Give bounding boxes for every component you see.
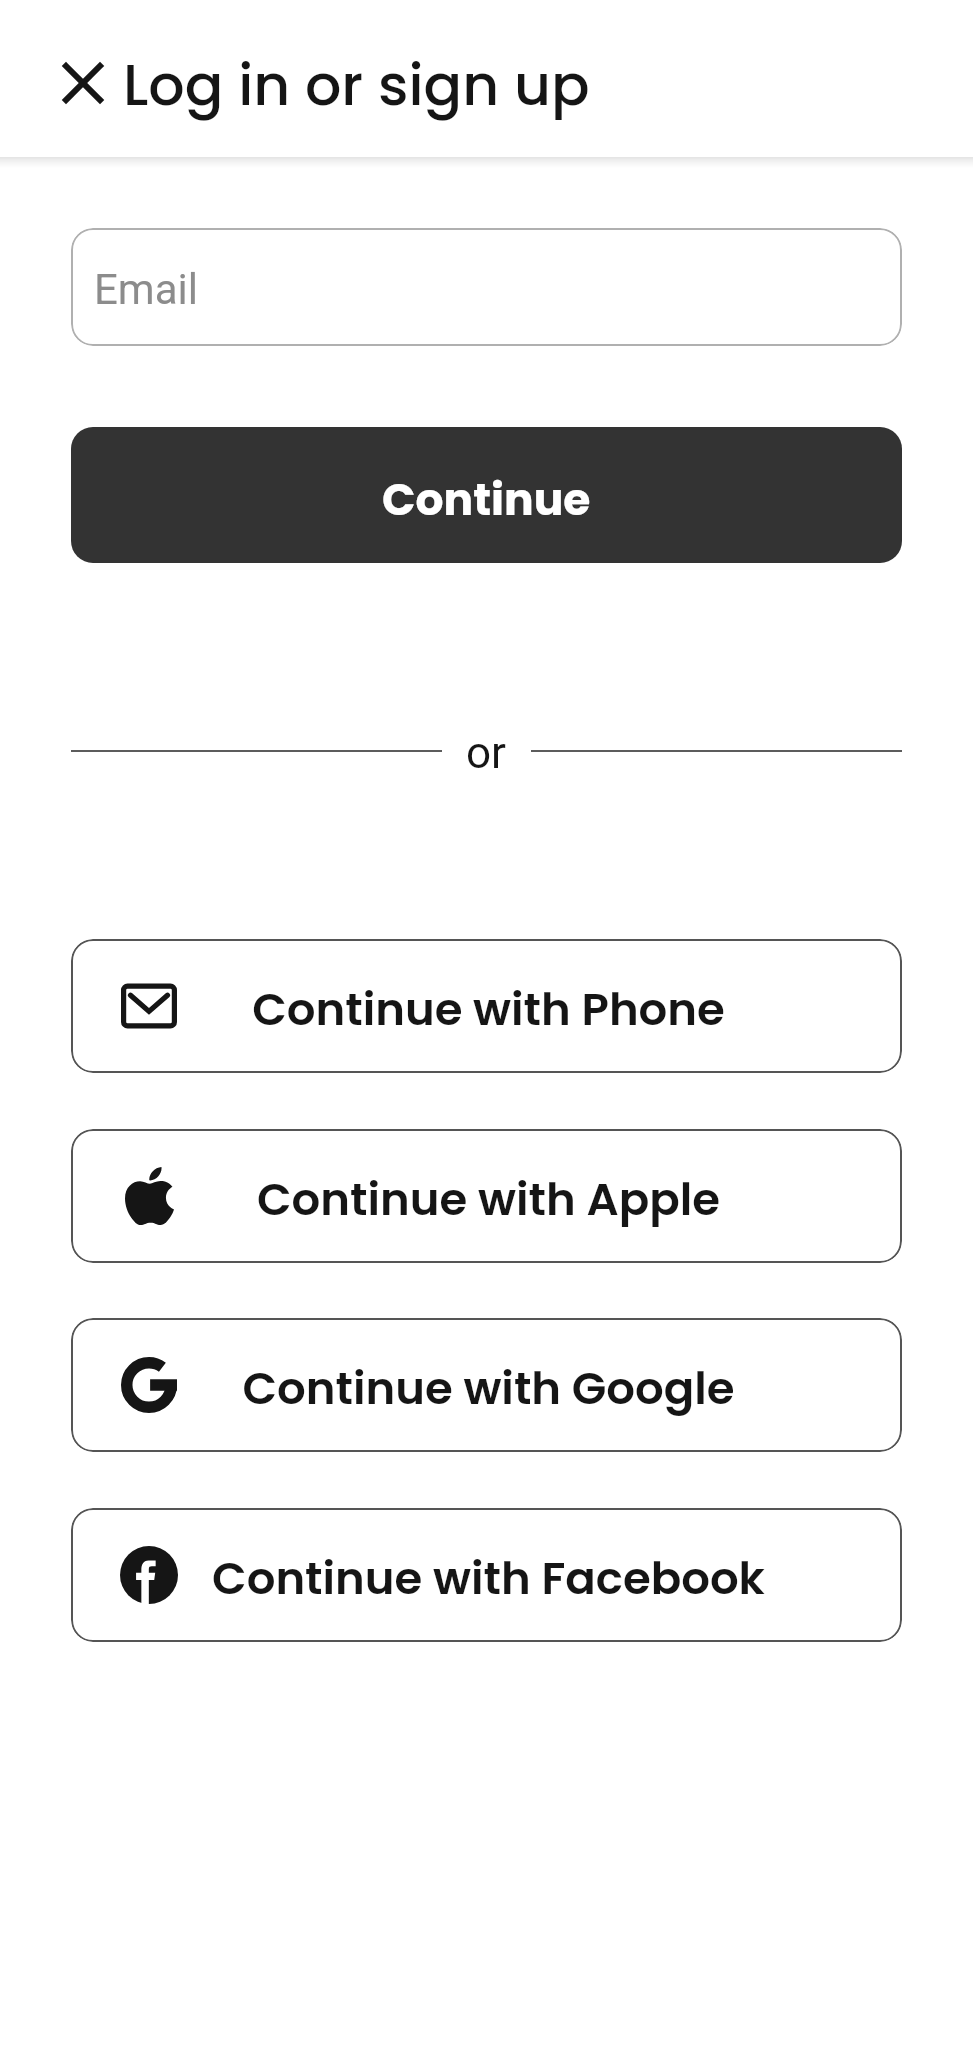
staticText: Continue: [382, 469, 591, 531]
staticText: Email: [94, 265, 198, 314]
button[interactable]: Continue with Facebook: [71, 1508, 902, 1642]
button[interactable]: Continue with Phone: [71, 939, 902, 1073]
staticText: Continue with Apple: [257, 1168, 720, 1231]
staticText: Continue with Facebook: [212, 1547, 765, 1610]
staticText: or: [466, 727, 507, 779]
staticText: Log in or sign up: [123, 45, 590, 125]
button[interactable]: Continue with Apple: [71, 1129, 902, 1263]
staticText: Continue with Phone: [252, 978, 725, 1041]
button[interactable]: Continue: [71, 427, 902, 563]
button[interactable]: Close: [43, 39, 123, 119]
button[interactable]: Email: [71, 228, 902, 346]
staticText: Continue with Google: [242, 1357, 735, 1420]
button[interactable]: Continue with Google: [71, 1318, 902, 1452]
